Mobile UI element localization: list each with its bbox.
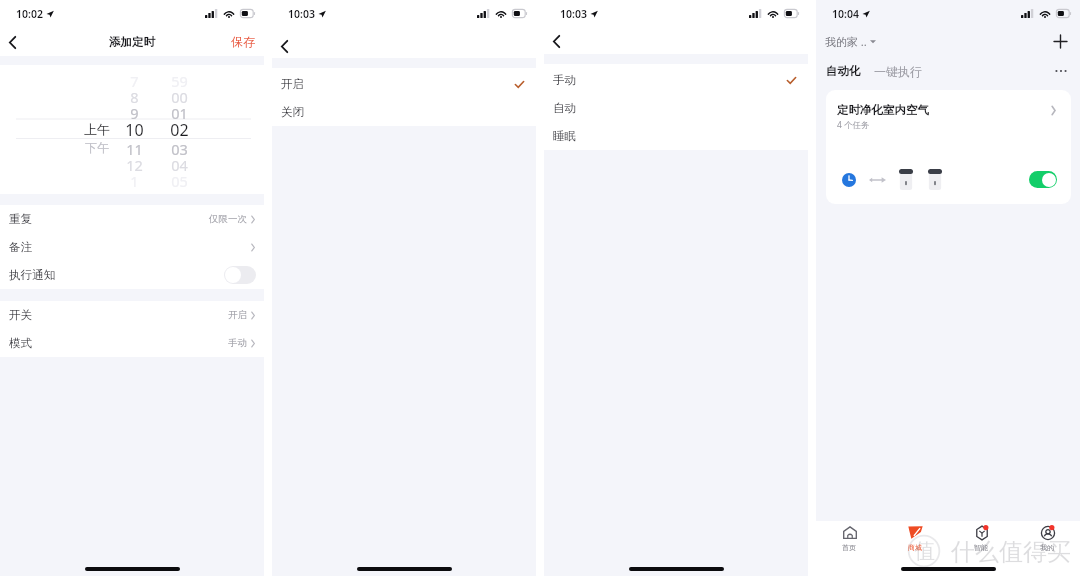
staticText: 仅限一次 [209,213,247,225]
staticText: 7 [130,71,139,87]
staticText: 开关 [9,308,33,323]
staticText: 我的 [1040,543,1054,552]
button[interactable]: Add [1050,31,1070,51]
button[interactable]: 定时净化室内空气 [826,90,1071,204]
staticText: 02 [170,119,189,139]
button[interactable]: 关闭 [272,98,536,126]
button[interactable]: 手动 [544,66,808,94]
staticText: 定时净化室内空气 [837,103,929,117]
staticText: 模式 [9,336,33,351]
staticText: 添加定时 [109,35,155,49]
staticText: 10:04 [832,7,859,21]
staticText: 备注 [9,240,33,255]
button[interactable] [1029,171,1057,188]
staticText: 开启 [228,309,247,321]
button[interactable] [224,266,256,284]
button[interactable]: 睡眠 [544,122,808,150]
staticText: 关闭 [281,105,305,120]
staticText: 我的家 .. [825,34,867,49]
staticText: 00 [171,87,188,103]
staticText: 01 [171,103,188,119]
staticText: 59 [171,71,188,87]
staticText: 自动化 [826,64,861,78]
staticText: 睡眠 [553,129,577,144]
button[interactable]: 执行通知 [0,261,264,289]
staticText: 值 [914,538,935,564]
button[interactable]: 智能 [948,521,1014,555]
staticText: 首页 [842,543,856,552]
button[interactable]: 自动化 [825,64,862,78]
button[interactable]: 开关 [0,301,264,329]
staticText: 保存 [231,34,255,49]
staticText: 05 [171,171,188,187]
staticText: 10:03 [288,7,315,21]
staticText: 什么值得买 [951,537,1071,567]
button[interactable]: 我的 [1014,521,1080,555]
staticText: 1 [130,171,139,187]
button[interactable]: 自动 [544,94,808,122]
staticText: 下午 [85,140,109,155]
staticText: 一键执行 [874,64,922,79]
staticText: 重复 [9,212,33,227]
staticText: 自动 [553,101,577,116]
button[interactable]: 我的家 .. [824,34,877,49]
button[interactable]: 商城 [882,521,948,555]
button[interactable]: 开启 [272,70,536,98]
button[interactable]: Back [0,30,24,54]
staticText: 开启 [281,77,305,92]
button[interactable]: Back [272,34,296,58]
staticText: 智能 [974,543,988,552]
button[interactable]: 保存 [231,34,264,49]
staticText: 10:03 [560,7,587,21]
staticText: 手动 [228,337,247,349]
staticText: 执行通知 [9,268,56,283]
button[interactable]: 一键执行 [873,64,923,79]
button[interactable]: Back [544,29,568,53]
staticText: 11 [126,139,143,155]
button[interactable]: 备注 [0,233,264,261]
staticText: 10 [125,119,144,139]
staticText: 4 个任务 [837,119,870,131]
button[interactable]: 首页 [816,521,882,555]
button[interactable]: More options [1052,62,1070,80]
button[interactable]: 重复 [0,205,264,233]
staticText: 上午 [84,121,110,137]
button[interactable]: 模式 [0,329,264,357]
staticText: 9 [130,103,139,119]
staticText: 8 [130,87,139,103]
staticText: 12 [126,155,143,171]
staticText: 03 [171,139,188,155]
staticText: 04 [171,155,188,171]
staticText: 10:02 [16,7,43,21]
staticText: 商城 [908,543,922,552]
staticText: 手动 [553,73,577,88]
